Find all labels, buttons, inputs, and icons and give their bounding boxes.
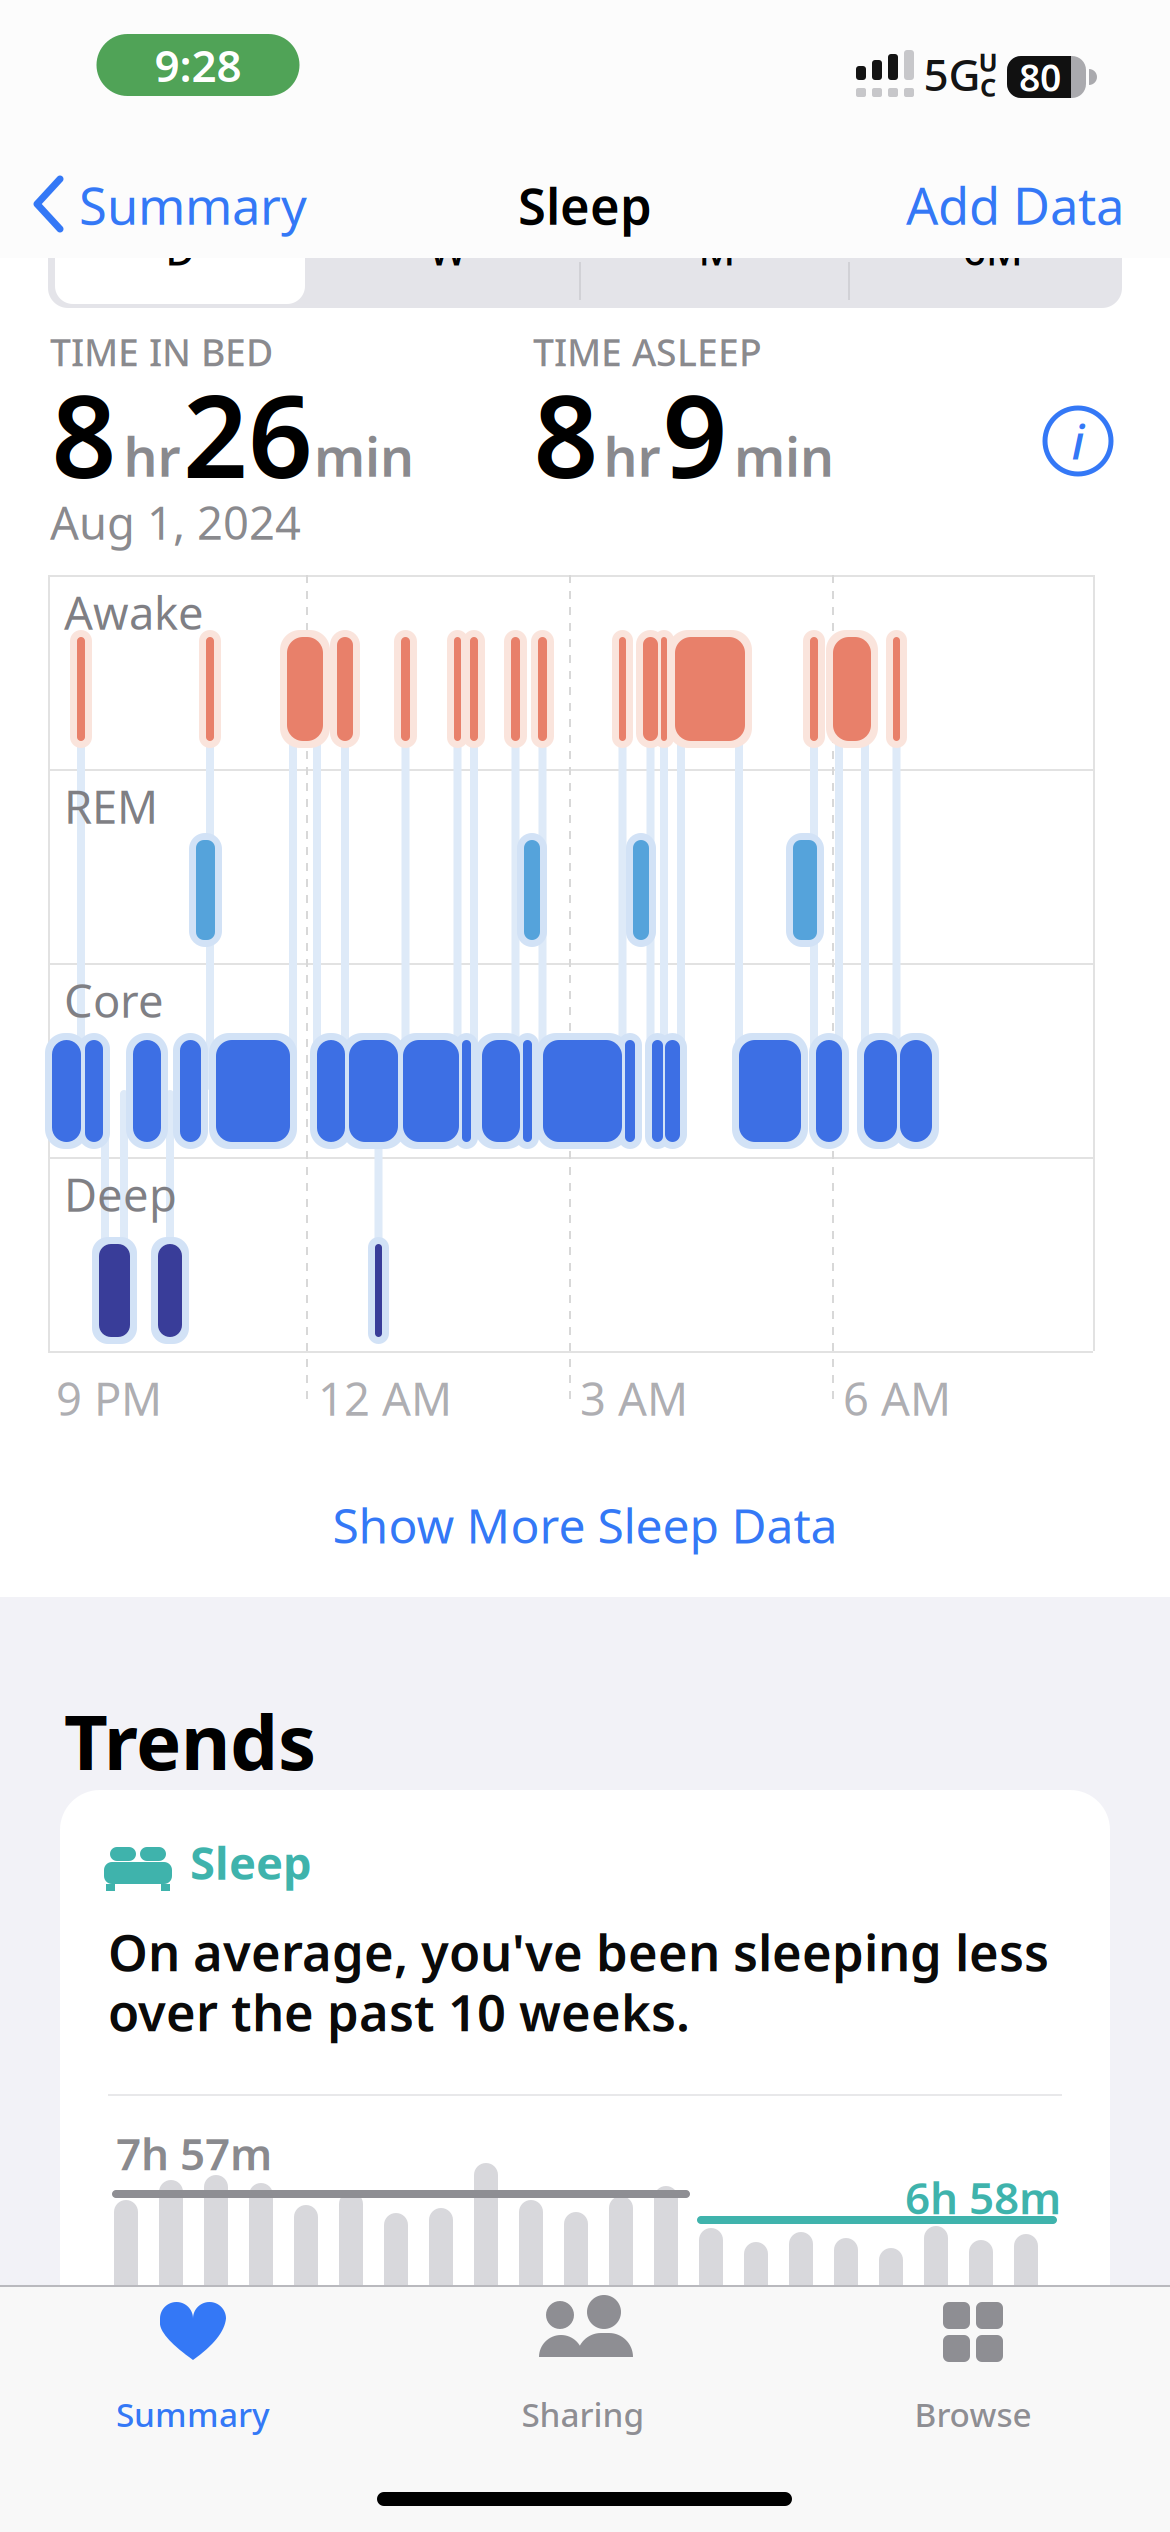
button[interactable]: Summary bbox=[37, 171, 307, 239]
staticText: 7h 57m bbox=[116, 2124, 272, 2182]
staticText: hr bbox=[123, 421, 180, 491]
staticText: 9 PM bbox=[56, 1368, 162, 1428]
staticText: Sleep bbox=[518, 171, 652, 239]
staticText: 26 bbox=[183, 359, 313, 509]
button[interactable]: Show More Sleep Data bbox=[332, 1493, 837, 1557]
button[interactable]: i bbox=[1045, 408, 1111, 474]
staticText: 80 bbox=[1019, 52, 1061, 102]
button[interactable]: Add Data bbox=[906, 171, 1124, 239]
staticText: C bbox=[980, 70, 996, 104]
staticText: 6 AM bbox=[843, 1368, 951, 1428]
staticText: Add Data bbox=[906, 171, 1124, 239]
staticText: 12 AM bbox=[318, 1368, 452, 1428]
staticText: Browse bbox=[914, 2392, 1031, 2436]
staticText: 5G bbox=[923, 45, 980, 103]
button[interactable]: Summary bbox=[0, 0, 1170, 2532]
staticText: 9:28 bbox=[154, 36, 241, 94]
staticText: 9 bbox=[662, 359, 727, 509]
staticText: Aug 1, 2024 bbox=[50, 492, 301, 552]
staticText: W bbox=[429, 223, 467, 276]
staticText: U bbox=[978, 45, 997, 79]
button[interactable]: Sleep bbox=[60, 1790, 1110, 2285]
staticText: min bbox=[314, 421, 414, 491]
button[interactable]: Sharing bbox=[0, 0, 1170, 2532]
staticText: Awake bbox=[64, 582, 204, 642]
staticText: Core bbox=[64, 970, 164, 1030]
staticText: hr bbox=[603, 421, 660, 491]
button[interactable]: Browse bbox=[0, 0, 1170, 2532]
staticText: Trends bbox=[64, 1690, 316, 1791]
staticText: D bbox=[165, 223, 194, 276]
staticText: REM bbox=[64, 776, 158, 836]
staticText: TIME IN BED bbox=[50, 327, 273, 377]
staticText: Sharing bbox=[521, 2392, 644, 2436]
staticText: Deep bbox=[64, 1164, 177, 1224]
button[interactable]: 9:28 bbox=[96, 34, 299, 96]
staticText: min bbox=[734, 421, 834, 491]
staticText: 8 bbox=[51, 359, 116, 509]
staticText: Summary bbox=[116, 2392, 270, 2436]
staticText: 6M bbox=[963, 223, 1023, 276]
staticText: 3 AM bbox=[580, 1368, 688, 1428]
staticText: 8 bbox=[533, 359, 598, 509]
staticText: i bbox=[1071, 409, 1084, 473]
staticText: over the past 10 weeks. bbox=[108, 1978, 690, 2045]
staticText: On average, you've been sleeping less bbox=[108, 1918, 1049, 1985]
staticText: M bbox=[698, 223, 735, 276]
staticText: 6h 58m bbox=[905, 2168, 1061, 2226]
staticText: Sleep bbox=[190, 1832, 312, 1892]
staticText: Show More Sleep Data bbox=[332, 1493, 837, 1557]
staticText: TIME ASLEEP bbox=[533, 327, 762, 377]
staticText: Summary bbox=[79, 171, 307, 239]
